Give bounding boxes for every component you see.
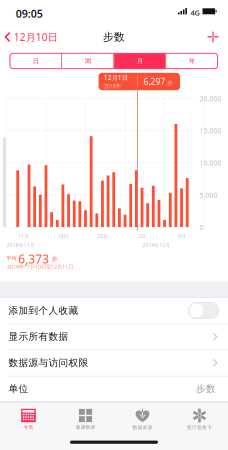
staticText: 6,297: [143, 76, 165, 87]
staticText: 今天: [23, 424, 33, 430]
staticText: 2018年: [104, 82, 122, 90]
staticText: 单位: [8, 383, 28, 395]
staticText: 平均: [7, 255, 17, 261]
staticText: 2018年11月10日至12月11日: [7, 263, 73, 270]
staticText: 6,373: [18, 251, 49, 267]
staticText: 11日: [18, 233, 29, 239]
staticText: 15,000: [199, 126, 221, 135]
staticText: 健康数据: [75, 424, 95, 430]
staticText: 数据来源: [132, 424, 152, 430]
staticText: 0: [199, 223, 203, 232]
staticText: 年: [189, 57, 195, 65]
staticText: 25日: [97, 233, 108, 239]
button[interactable]: 添加到个人收藏: [0, 297, 228, 324]
staticText: 12月1日: [104, 73, 128, 82]
staticText: 2日: [138, 233, 146, 239]
staticText: 步数: [103, 30, 125, 44]
staticText: 月: [137, 57, 143, 65]
staticText: 10,000: [199, 158, 221, 167]
button[interactable]: 添加: [198, 25, 227, 49]
button[interactable]: 健康数据: [57, 406, 114, 432]
staticText: 2018年11月: [7, 242, 35, 248]
staticText: 12月10日: [14, 30, 58, 44]
staticText: 09:05: [16, 6, 43, 21]
staticText: 2018年12月: [142, 242, 170, 248]
button[interactable]: 12月10日: [0, 25, 66, 49]
button[interactable]: 显示所有数据: [0, 324, 228, 350]
button[interactable]: 单位: [0, 376, 228, 402]
staticText: 4G: [190, 8, 199, 18]
staticText: 20,000: [199, 94, 221, 103]
staticText: 步: [167, 79, 173, 87]
staticText: 步: [51, 255, 57, 263]
button[interactable]: 今天: [0, 406, 57, 432]
staticText: 添加到个人收藏: [8, 304, 78, 317]
staticText: 5,000: [199, 191, 217, 200]
button[interactable]: 周: [62, 53, 113, 69]
button[interactable]: 日: [10, 53, 61, 69]
staticText: 周: [85, 57, 91, 65]
staticText: 数据源与访问权限: [8, 357, 88, 369]
staticText: 日: [33, 57, 39, 65]
staticText: 18日: [58, 233, 69, 239]
button[interactable]: 医疗急救卡: [171, 406, 228, 432]
button[interactable]: 月: [114, 53, 165, 69]
button[interactable]: 年: [166, 53, 218, 69]
staticText: 步数: [196, 383, 216, 395]
staticText: 9日: [178, 233, 186, 239]
button[interactable]: 数据源与访问权限: [0, 350, 228, 376]
button[interactable]: 数据来源: [114, 406, 171, 432]
staticText: 医疗急救卡: [187, 424, 212, 430]
staticText: 显示所有数据: [8, 331, 68, 343]
